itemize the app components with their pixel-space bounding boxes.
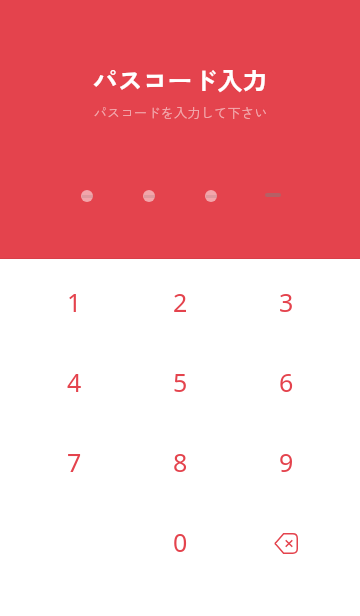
staticText: 6	[279, 365, 294, 399]
staticText: 1	[67, 285, 82, 319]
button[interactable]: 0	[127, 502, 233, 582]
button[interactable]: 8	[127, 422, 233, 502]
other: Backspace	[274, 533, 298, 554]
staticText: パスコードを入力して下さい	[93, 102, 268, 121]
staticText: 8	[173, 445, 188, 479]
staticText: 0	[173, 525, 188, 559]
button[interactable]: 7	[21, 422, 127, 502]
staticText: 2	[173, 285, 188, 319]
staticText: 4	[67, 365, 82, 399]
button[interactable]: Backspace	[233, 502, 339, 582]
button[interactable]: 6	[233, 342, 339, 422]
button[interactable]: 1	[21, 262, 127, 342]
button[interactable]: 2	[127, 262, 233, 342]
staticText: パスコード入力	[92, 61, 268, 97]
staticText: 9	[279, 445, 294, 479]
staticText: 7	[67, 445, 82, 479]
button[interactable]: 9	[233, 422, 339, 502]
button[interactable]: 5	[127, 342, 233, 422]
staticText: 3	[279, 285, 294, 319]
button[interactable]: 4	[21, 342, 127, 422]
staticText: 5	[173, 365, 188, 399]
button[interactable]: 3	[233, 262, 339, 342]
